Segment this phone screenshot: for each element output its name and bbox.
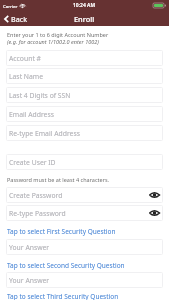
button[interactable]: Tap to select First Security Question — [7, 226, 164, 236]
button[interactable]: Account # — [6, 50, 163, 66]
staticText: Your Answer — [9, 276, 50, 285]
staticText: Tap to select Second Security Question — [7, 261, 125, 270]
staticText: Tap to select First Security Question — [7, 227, 116, 236]
staticText: Enroll — [74, 14, 95, 24]
staticText: Carrier — [3, 3, 18, 9]
staticText: Email Address — [9, 110, 54, 119]
button[interactable]: Tap to select Second Security Question — [7, 260, 164, 270]
staticText: Back — [11, 14, 27, 24]
staticText: Re-type Email Address — [9, 129, 80, 138]
staticText: Create User ID — [9, 158, 56, 167]
button[interactable]: Last 4 Digits of SSN — [6, 87, 163, 103]
button[interactable]: Re-type Email Address — [6, 125, 163, 141]
button[interactable]: Create Password — [6, 187, 163, 203]
staticText: Your Answer — [9, 243, 50, 252]
staticText: Last 4 Digits of SSN — [9, 91, 71, 100]
other: Show password — [149, 191, 160, 199]
staticText: Re-type Password — [9, 209, 66, 218]
staticText: Last Name — [9, 72, 44, 81]
button[interactable]: Your Answer — [6, 272, 163, 288]
button[interactable]: Email Address — [6, 106, 163, 122]
button[interactable]: Tap to select Third Security Question — [7, 291, 164, 300]
staticText: 10:24 AM — [73, 2, 96, 9]
staticText: Tap to select Third Security Question — [7, 292, 119, 300]
button[interactable]: Your Answer — [6, 239, 163, 255]
button[interactable]: Re-type Password — [6, 205, 163, 221]
button[interactable]: Last Name — [6, 68, 163, 84]
button[interactable]: Back — [4, 14, 27, 24]
staticText: Password must be at least 4 characters. — [7, 176, 110, 183]
staticText: (e.g. for account 1/1002.0 enter 1002) — [7, 38, 99, 45]
button[interactable]: Create User ID — [6, 154, 163, 170]
staticText: Create Password — [9, 191, 63, 200]
other: Show password — [149, 209, 160, 217]
staticText: Enter your 1 to 6 digit Account Number — [7, 31, 109, 38]
staticText: Account # — [9, 54, 41, 63]
